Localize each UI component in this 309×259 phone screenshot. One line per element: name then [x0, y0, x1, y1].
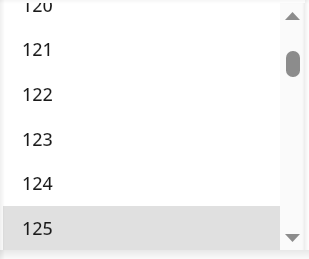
button[interactable]: Scroll up	[280, 3, 305, 34]
staticText: 124	[22, 171, 53, 196]
button[interactable]: 125	[3, 206, 280, 250]
button[interactable]: 121	[3, 27, 280, 72]
button[interactable]: 124	[3, 161, 280, 206]
staticText: 123	[22, 127, 53, 152]
button[interactable]: 122	[3, 72, 280, 117]
staticText: 120	[22, 3, 53, 18]
button[interactable]: Scroll down	[280, 219, 305, 250]
staticText: 122	[22, 82, 53, 107]
button[interactable]: Scrollbar thumb	[286, 51, 300, 77]
staticText: 125	[22, 216, 53, 241]
button[interactable]: 120	[3, 3, 280, 28]
staticText: 121	[22, 37, 53, 62]
button[interactable]: 123	[3, 117, 280, 162]
